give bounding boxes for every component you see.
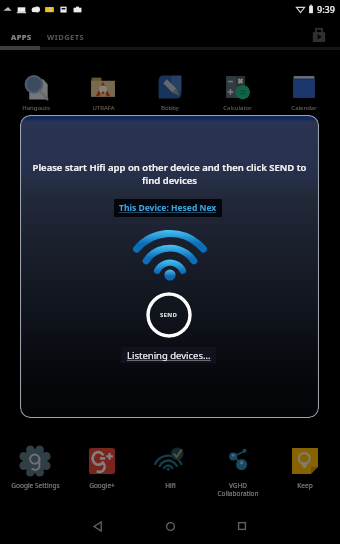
button[interactable]: WIDGETS	[42, 26, 90, 47]
staticText: Google+	[89, 481, 115, 490]
button[interactable]: Home	[148, 508, 192, 544]
button[interactable]: APPS	[0, 26, 42, 47]
button[interactable]: Google Settings	[2, 441, 68, 490]
button[interactable]: UTRAFA	[72, 62, 134, 112]
staticText: Calculator	[223, 104, 252, 112]
button[interactable]: Google+	[69, 441, 135, 490]
button[interactable]: Back	[76, 508, 120, 544]
staticText: UTRAFA	[92, 104, 115, 112]
staticText: Calendar	[291, 104, 317, 112]
button[interactable]: VGHD Collaboration	[205, 441, 271, 498]
staticText: VGHD Collaboration	[217, 481, 259, 498]
staticText: This Device: Hesed Nex	[119, 202, 217, 214]
staticText: Listening devices...	[127, 349, 211, 362]
staticText: WIDGETS	[47, 32, 85, 42]
button[interactable]: Bobby	[139, 62, 201, 112]
button[interactable]: Calendar	[273, 62, 335, 112]
button[interactable]: Keep	[272, 441, 338, 490]
staticText: 9:39	[317, 3, 335, 15]
button[interactable]: Calculator	[206, 62, 268, 112]
staticText: Hangouts	[22, 104, 50, 112]
button[interactable]: Hangouts	[5, 62, 67, 112]
button[interactable]: Play Store	[308, 24, 330, 46]
staticText: Keep	[297, 481, 313, 490]
button[interactable]: This Device: Hesed Nex	[114, 199, 222, 217]
button[interactable]: Recents	[220, 508, 264, 544]
staticText: Bobby	[161, 104, 179, 112]
button[interactable]: Hifi	[137, 441, 203, 490]
staticText: Google Settings	[11, 481, 60, 490]
button[interactable]: Listening devices...	[121, 347, 216, 363]
staticText: SEND	[160, 311, 178, 319]
staticText: APPS	[11, 32, 32, 42]
staticText: Please start Hifi app on other device an…	[28, 161, 311, 187]
button[interactable]: SEND	[146, 292, 192, 338]
staticText: Hifi	[165, 481, 176, 490]
